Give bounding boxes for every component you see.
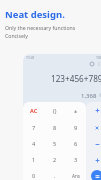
button[interactable]: 7 [23,119,44,136]
button[interactable]: 8 [44,119,65,136]
staticText: 1,368 [81,92,97,100]
staticText: Concisely [5,32,28,39]
button[interactable]: 1 [23,152,44,168]
staticText: 4 [32,140,36,148]
staticText: 7 [32,124,36,132]
staticText: AC [30,107,38,115]
staticText: ± [74,107,78,115]
staticText: 100% [96,55,101,60]
button[interactable]: 5 [44,136,65,152]
button[interactable]: Operator [86,136,101,152]
button[interactable]: 0 [23,168,44,180]
button[interactable]: 4 [23,136,44,152]
button[interactable]: () [44,102,65,119]
staticText: 5 [53,140,57,148]
staticText: 3 [74,156,78,164]
button[interactable]: AC [23,102,44,119]
staticText: 1 [32,156,36,164]
staticText: . [54,172,56,180]
button[interactable]: Ans [65,168,86,180]
staticText: 11:41 [26,55,35,60]
button[interactable]: 6 [65,136,86,152]
staticText: () [53,107,57,115]
button[interactable]: Equals [91,170,101,180]
button[interactable]: Operator [86,152,101,168]
button[interactable]: 9 [65,119,86,136]
staticText: 9 [74,124,78,132]
staticText: 2 [53,156,57,164]
staticText: Neat design. [5,8,65,21]
staticText: 123+456+789 [51,73,101,84]
button[interactable]: 3 [65,152,86,168]
button[interactable]: History [88,60,95,67]
button[interactable]: ± [65,102,86,119]
staticText: 6 [74,140,78,148]
staticText: 8 [53,124,57,132]
button[interactable]: 2 [44,152,65,168]
staticText: 0 [32,172,36,180]
button[interactable]: Operator [86,102,101,119]
button[interactable]: More options [95,60,101,67]
button[interactable]: . [44,168,65,180]
staticText: Ans [72,173,80,179]
button[interactable]: Copy result [99,93,101,98]
button[interactable]: Operator [86,119,101,136]
staticText: Only the necessary functions [5,24,76,31]
